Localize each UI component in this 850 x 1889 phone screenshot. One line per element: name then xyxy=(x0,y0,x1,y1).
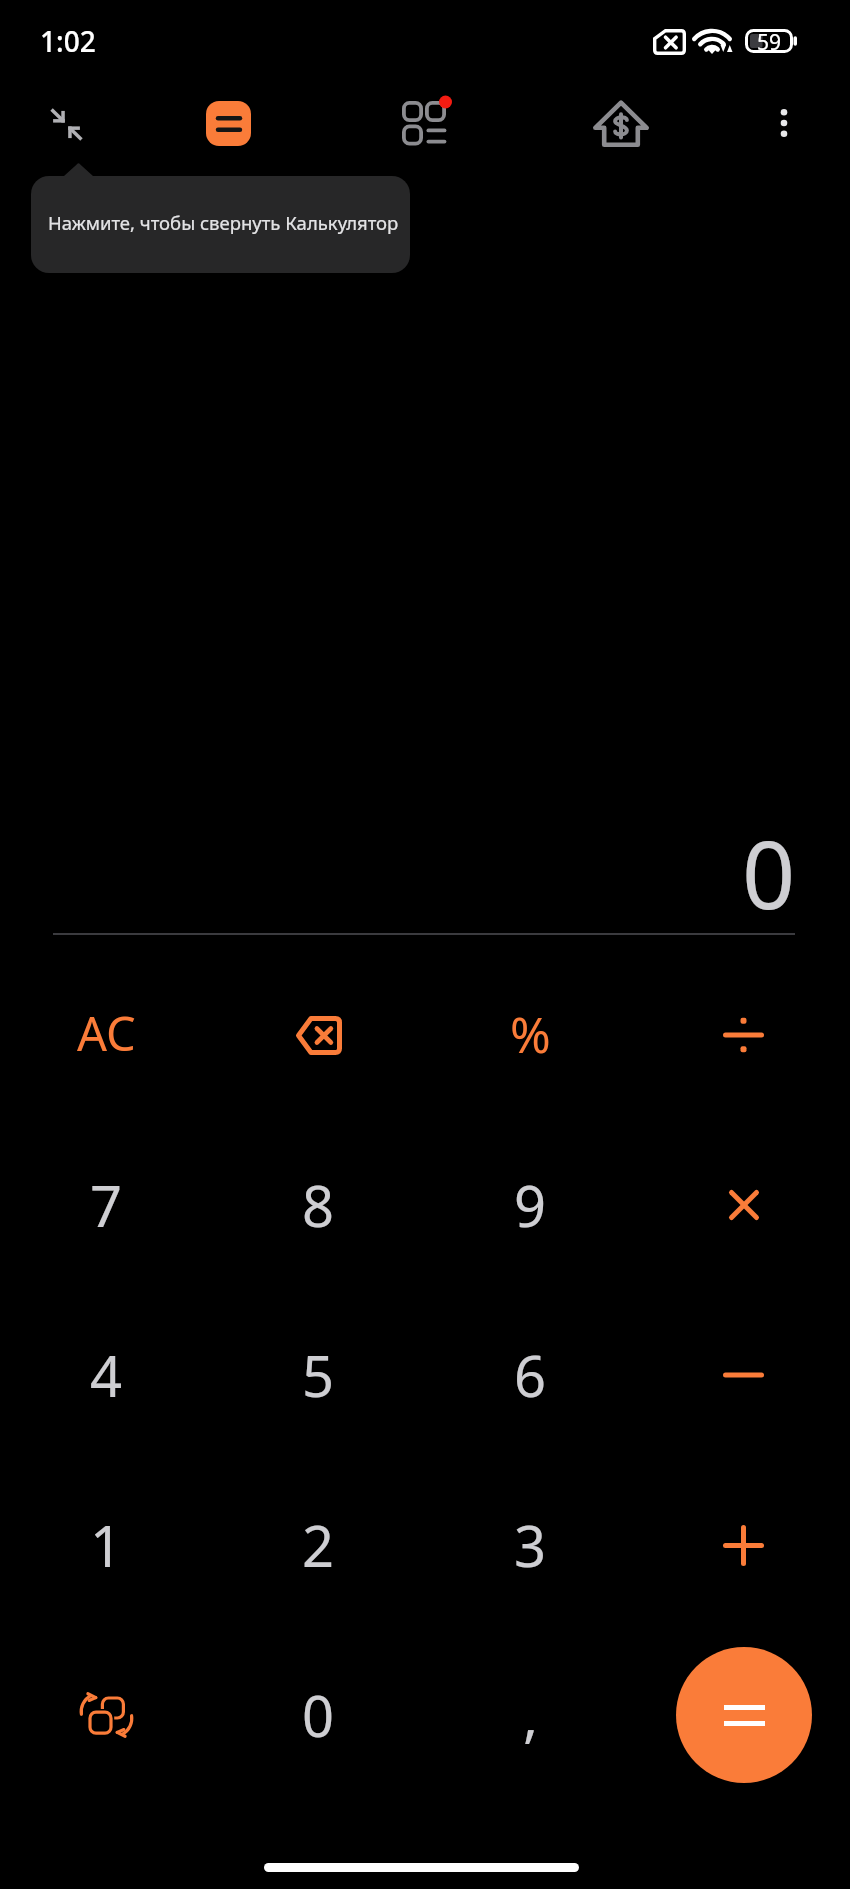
staticText: % xyxy=(510,1001,551,1068)
button[interactable]: Multiply xyxy=(637,1120,850,1290)
other: Backspace xyxy=(295,1016,342,1055)
other: Minus xyxy=(723,1372,764,1378)
button[interactable]: History xyxy=(376,80,472,166)
other: Plus xyxy=(723,1525,764,1566)
staticText: 8 xyxy=(302,1167,335,1243)
other: Multiply xyxy=(729,1190,759,1220)
button[interactable]: 8 xyxy=(212,1120,424,1290)
button[interactable]: Divide xyxy=(637,950,850,1120)
staticText: 3 xyxy=(514,1507,547,1583)
staticText: 2 xyxy=(302,1507,335,1583)
button[interactable]: 3 xyxy=(424,1460,637,1630)
button[interactable]: Collapse calculator xyxy=(18,80,114,166)
staticText: 6 xyxy=(514,1337,547,1413)
button[interactable]: 1 xyxy=(0,1460,212,1630)
button[interactable]: Minus xyxy=(637,1290,850,1460)
staticText: 7 xyxy=(90,1167,123,1243)
other: Divide xyxy=(723,1015,764,1055)
staticText: 1:02 xyxy=(40,22,96,60)
button[interactable]: Plus xyxy=(637,1460,850,1630)
staticText: 4 xyxy=(90,1337,123,1413)
button[interactable]: 2 xyxy=(212,1460,424,1630)
staticText: 5 xyxy=(302,1337,335,1413)
staticText: 59 xyxy=(757,28,782,52)
button[interactable]: Backspace xyxy=(212,950,424,1120)
staticText: 0 xyxy=(302,1677,335,1753)
button[interactable]: Unit converter xyxy=(0,1630,212,1800)
button[interactable]: 6 xyxy=(424,1290,637,1460)
button[interactable]: Mortgage calculator xyxy=(573,80,669,166)
button[interactable]: 0 xyxy=(212,1630,424,1800)
button[interactable]: Clear all xyxy=(0,950,212,1120)
button[interactable]: 4 xyxy=(0,1290,212,1460)
staticText: Нажмите, чтобы свернуть Калькулятор xyxy=(48,210,399,235)
button[interactable]: More options xyxy=(736,80,832,166)
button[interactable]: 5 xyxy=(212,1290,424,1460)
button[interactable]: Equals xyxy=(637,1630,850,1800)
staticText: 0 xyxy=(742,810,796,937)
button[interactable]: Calculator xyxy=(180,80,276,166)
button[interactable]: 7 xyxy=(0,1120,212,1290)
other: Unit converter xyxy=(81,1693,132,1737)
button[interactable]: 9 xyxy=(424,1120,637,1290)
button[interactable]: Decimal separator xyxy=(424,1630,637,1800)
button[interactable]: Percent xyxy=(424,950,637,1120)
button[interactable]: Equals xyxy=(676,1647,812,1783)
staticText: 1 xyxy=(90,1507,123,1583)
staticText: AC xyxy=(77,1001,136,1065)
staticText: , xyxy=(523,1677,539,1753)
staticText: 9 xyxy=(514,1167,547,1243)
